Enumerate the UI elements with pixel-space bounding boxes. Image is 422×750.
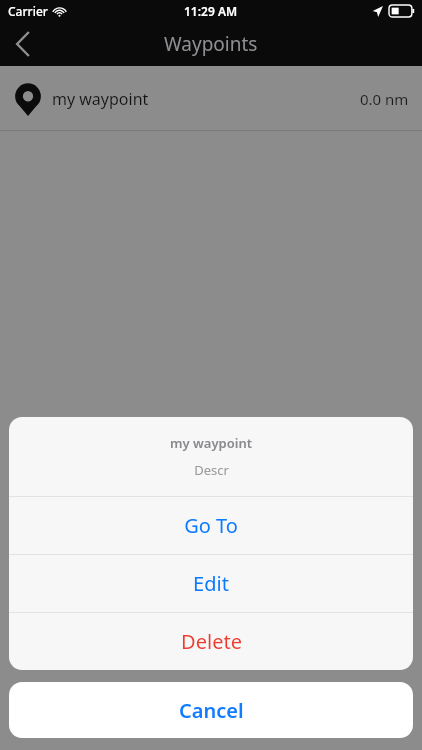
staticText: Edit (193, 570, 229, 597)
staticText: my waypoint (52, 88, 149, 110)
staticText: Cancel (179, 697, 244, 724)
staticText: 0.0 nm (360, 89, 409, 109)
staticText: my waypoint (170, 434, 252, 452)
staticText: Delete (181, 628, 242, 655)
button[interactable]: Delete (9, 613, 413, 670)
staticText: Go To (184, 512, 238, 539)
button[interactable]: Back (0, 22, 48, 66)
button[interactable]: Edit (9, 555, 413, 612)
button[interactable]: my waypoint (0, 66, 422, 131)
button[interactable]: Cancel (9, 682, 413, 738)
staticText: Descr (194, 461, 229, 479)
staticText: 11:29 AM (184, 3, 238, 19)
button[interactable]: Go To (9, 497, 413, 554)
staticText: Waypoints (164, 31, 258, 57)
staticText: Carrier (8, 3, 48, 19)
